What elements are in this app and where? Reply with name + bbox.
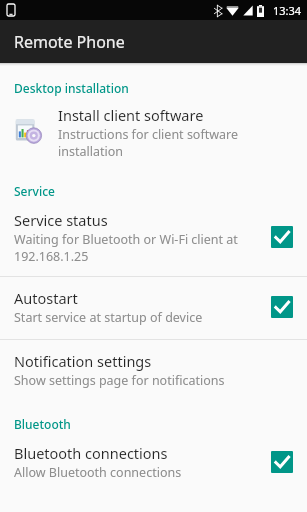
staticText: Remote Phone: [14, 31, 125, 53]
staticText: Bluetooth connections: [14, 443, 168, 463]
button[interactable]: Autostart: [0, 277, 307, 339]
staticText: Autostart: [14, 288, 78, 308]
other: Battery: [257, 5, 264, 17]
staticText: Bluetooth: [14, 416, 71, 432]
other: Device: [7, 4, 15, 16]
button[interactable]: Install client software: [0, 101, 307, 169]
button[interactable]: Enabled: [271, 296, 293, 318]
other: Signal: [243, 5, 253, 16]
other: Bluetooth: [214, 5, 222, 17]
staticText: Install client software: [58, 105, 204, 125]
button[interactable]: Service status: [0, 204, 307, 276]
staticText: Notification settings: [14, 351, 152, 371]
staticText: Allow Bluetooth connections: [14, 464, 182, 481]
button[interactable]: Bluetooth connections: [0, 437, 307, 493]
staticText: Instructions for client software install…: [58, 126, 293, 159]
staticText: Start service at startup of device: [14, 309, 203, 326]
staticText: Waiting for Bluetooth or Wi-Fi client at…: [14, 231, 238, 264]
other: Wi-Fi: [226, 5, 239, 16]
staticText: Service status: [14, 210, 108, 230]
staticText: Show settings page for notifications: [14, 372, 225, 389]
button[interactable]: Enabled: [271, 451, 293, 473]
button[interactable]: Enabled: [271, 226, 293, 248]
staticText: 13:34: [273, 3, 302, 18]
staticText: Desktop installation: [14, 80, 129, 96]
button[interactable]: Notification settings: [0, 340, 307, 402]
staticText: Service: [14, 183, 55, 199]
